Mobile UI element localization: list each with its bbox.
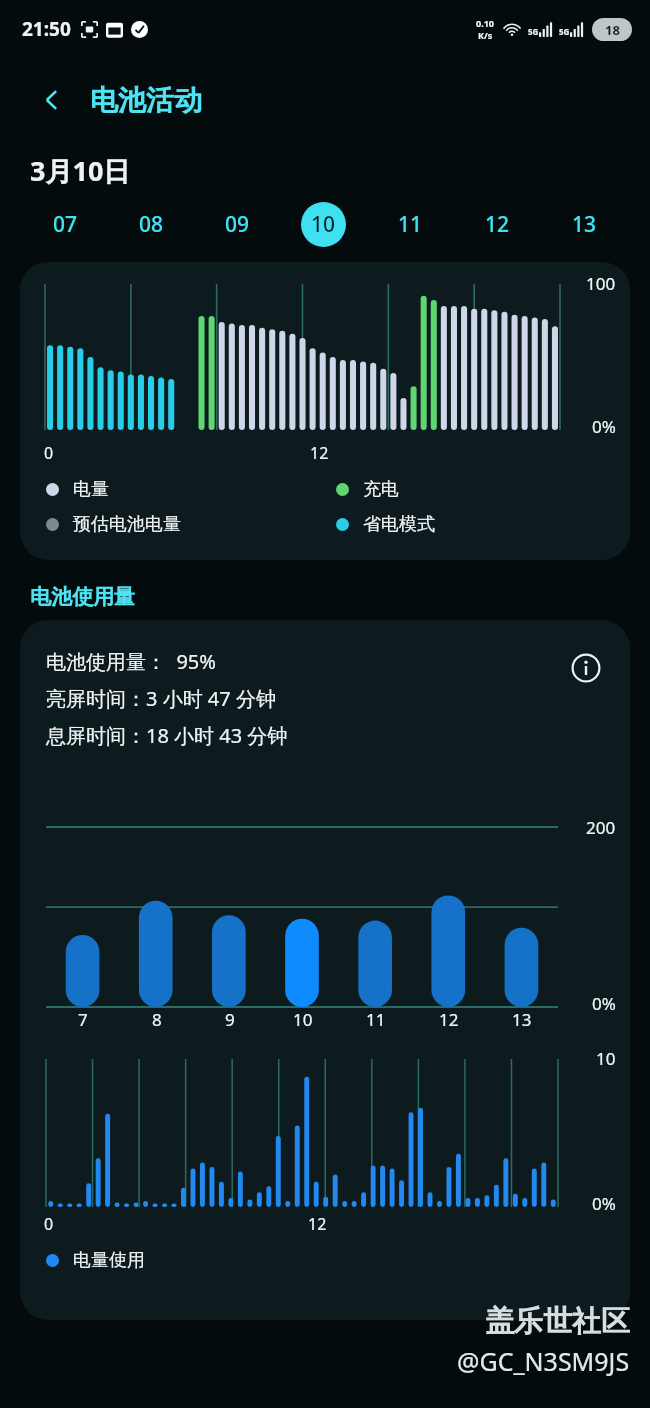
button[interactable]: Back	[30, 78, 74, 122]
button[interactable]: 13	[541, 198, 628, 250]
staticText: 12	[485, 210, 510, 239]
staticText: 电量使用	[73, 1249, 145, 1272]
staticText: 11	[366, 1008, 386, 1031]
staticText: 11	[398, 210, 423, 239]
button[interactable]: 10	[280, 198, 367, 250]
staticText: 息屏时间：18 小时 43 分钟	[46, 722, 288, 749]
staticText: 100	[586, 272, 616, 295]
staticText: 13	[512, 1008, 532, 1031]
staticText: 8	[152, 1008, 162, 1031]
staticText: 电池使用量	[30, 584, 135, 610]
staticText: 08	[139, 210, 164, 239]
staticText: 10	[311, 210, 336, 239]
staticText: K/s	[478, 29, 493, 41]
staticText: 12	[439, 1008, 459, 1031]
staticText: 0	[44, 442, 54, 464]
staticText: 省电模式	[363, 513, 435, 536]
button[interactable]: 07	[22, 198, 108, 250]
button[interactable]: 09	[194, 198, 280, 250]
button[interactable]: 08	[108, 198, 194, 250]
staticText: 200	[586, 816, 616, 839]
staticText: 0%	[592, 415, 616, 438]
button[interactable]: 11	[367, 198, 454, 250]
staticText: 5G	[528, 26, 539, 37]
staticText: 0%	[592, 992, 616, 1015]
staticText: 5G	[559, 26, 570, 37]
staticText: 12	[310, 442, 329, 464]
staticText: 预估电池电量	[73, 513, 181, 536]
staticText: 9	[225, 1008, 235, 1031]
staticText: 18	[605, 21, 620, 39]
staticText: @GC_N3SM9JS	[457, 1344, 630, 1378]
staticText: 07	[53, 210, 78, 239]
staticText: 电池活动	[90, 83, 202, 118]
staticText: 0%	[592, 1192, 616, 1215]
staticText: 21:50	[22, 16, 71, 42]
staticText: 10	[596, 1047, 616, 1070]
staticText: 0	[44, 1213, 54, 1235]
staticText: 3月10日	[30, 152, 131, 189]
button[interactable]: 100	[20, 262, 630, 560]
staticText: 盖乐世社区	[485, 1303, 630, 1340]
staticText: 亮屏时间：3 小时 47 分钟	[46, 685, 276, 712]
staticText: 09	[225, 210, 250, 239]
staticText: 充电	[363, 478, 399, 501]
staticText: 电量	[73, 478, 109, 501]
staticText: 0.10	[476, 17, 494, 29]
staticText: 7	[78, 1008, 88, 1031]
staticText: 10	[293, 1008, 313, 1031]
staticText: 电池使用量： 95%	[46, 648, 216, 675]
button[interactable]: 12	[454, 198, 541, 250]
staticText: 13	[572, 210, 597, 239]
staticText: 12	[308, 1213, 327, 1235]
button[interactable]: Info	[566, 648, 606, 688]
